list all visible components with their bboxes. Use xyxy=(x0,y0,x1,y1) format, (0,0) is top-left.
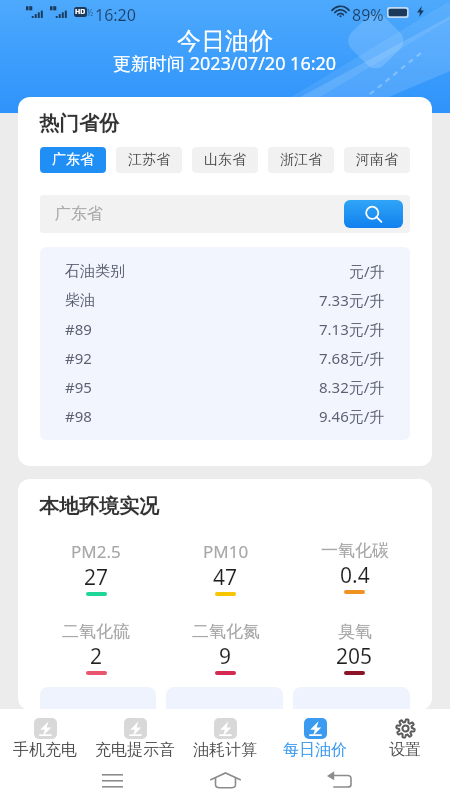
button[interactable]: 油耗计算 xyxy=(180,709,270,762)
staticText: 河南省 xyxy=(356,151,398,169)
staticText: 0.4 xyxy=(340,561,370,590)
staticText: PM2.5 xyxy=(71,540,121,563)
button[interactable]: 山东省 xyxy=(192,147,258,173)
staticText: 二氧化氮 xyxy=(192,621,260,642)
staticText: 本地环境实况 xyxy=(39,494,159,519)
staticText: 浙江省 xyxy=(280,151,322,169)
staticText: 充电提示音 xyxy=(95,740,175,760)
button[interactable]: Back xyxy=(313,762,364,800)
staticText: 更新时间 2023/07/20 16:20 xyxy=(113,51,337,76)
staticText: ½ xyxy=(87,7,94,18)
staticText: 江苏省 xyxy=(128,151,170,169)
staticText: 一氧化碳 xyxy=(321,540,389,561)
staticText: 27 xyxy=(84,563,109,592)
staticText: 手机充电 xyxy=(13,740,77,760)
staticText: #98 xyxy=(65,406,92,426)
staticText: 广东省 xyxy=(55,204,103,224)
staticText: 二氧化硫 xyxy=(62,621,130,642)
staticText: 7.68元/升 xyxy=(319,348,385,368)
staticText: 205 xyxy=(336,642,373,671)
button[interactable]: Home xyxy=(199,762,251,800)
staticText: 柴油 xyxy=(65,291,95,310)
button[interactable]: Recents xyxy=(87,762,138,800)
staticText: #92 xyxy=(65,348,92,368)
staticText: 7.33元/升 xyxy=(319,290,385,310)
button[interactable]: Search xyxy=(344,200,403,228)
staticText: 每日油价 xyxy=(283,740,347,760)
button[interactable]: 每日油价 xyxy=(270,709,360,762)
button[interactable]: 充电提示音 xyxy=(90,709,180,762)
staticText: 热门省份 xyxy=(39,111,119,136)
button[interactable]: 江苏省 xyxy=(116,147,182,173)
staticText: 9 xyxy=(219,642,232,671)
staticText: 89% xyxy=(352,4,384,26)
button[interactable]: 浙江省 xyxy=(268,147,334,173)
staticText: 7.13元/升 xyxy=(319,319,385,339)
button[interactable]: 广东省 xyxy=(40,147,106,173)
staticText: 元/升 xyxy=(349,261,385,281)
staticText: 油耗计算 xyxy=(193,740,257,760)
staticText: 9.46元/升 xyxy=(319,406,385,426)
staticText: HD xyxy=(75,7,86,17)
staticText: 广东省 xyxy=(52,151,94,169)
button[interactable]: 手机充电 xyxy=(0,709,90,762)
button[interactable]: 设置 xyxy=(360,709,450,762)
staticText: 8.32元/升 xyxy=(319,377,385,397)
staticText: 47 xyxy=(213,563,238,592)
button[interactable]: 河南省 xyxy=(344,147,410,173)
staticText: #89 xyxy=(65,319,92,339)
staticText: 山东省 xyxy=(204,151,246,169)
staticText: #95 xyxy=(65,377,92,397)
staticText: 石油类别 xyxy=(65,262,125,281)
staticText: 设置 xyxy=(389,740,421,760)
staticText: 16:20 xyxy=(95,4,136,26)
staticText: 2 xyxy=(90,642,103,671)
staticText: 今日油价 xyxy=(177,26,273,56)
staticText: 臭氧 xyxy=(338,621,372,642)
staticText: PM10 xyxy=(203,540,249,563)
